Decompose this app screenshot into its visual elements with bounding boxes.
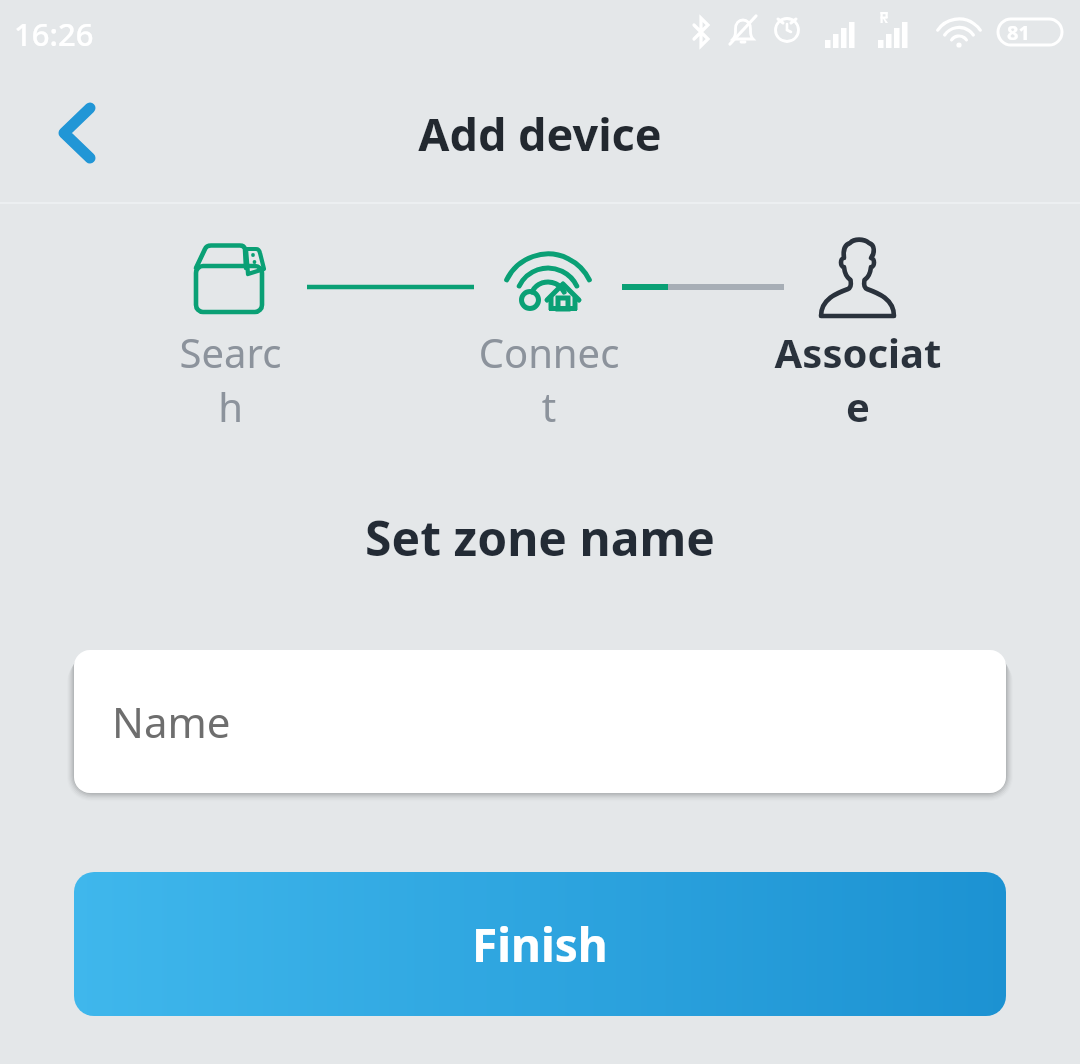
button[interactable]: Name — [74, 650, 1006, 793]
staticText: Search — [168, 325, 293, 433]
staticText: 16:26 — [14, 13, 94, 55]
staticText: Add device — [418, 103, 662, 164]
button[interactable]: Back — [26, 83, 126, 183]
staticText: Set zone name — [0, 505, 1080, 570]
staticText: 81 — [1007, 19, 1030, 46]
staticText: Connect — [473, 325, 625, 433]
staticText: Name — [112, 693, 231, 750]
staticText: Finish — [472, 913, 608, 976]
button[interactable]: Finish — [74, 872, 1006, 1016]
staticText: Associate — [763, 325, 953, 433]
